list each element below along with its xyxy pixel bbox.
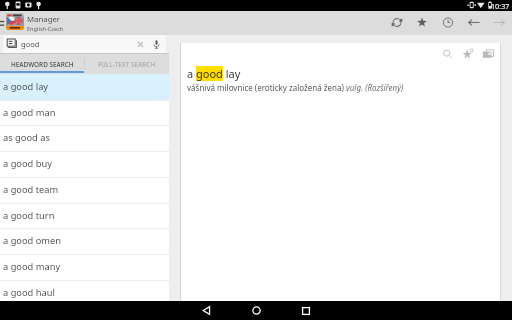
button[interactable]: Refresh xyxy=(385,12,410,34)
button[interactable]: History xyxy=(436,12,462,34)
staticText: English-Czech xyxy=(27,25,64,33)
button[interactable]: a good turn xyxy=(0,203,169,229)
staticText: vášnivá milovnice (eroticky založená žen… xyxy=(187,82,404,93)
staticText: a good haul xyxy=(3,286,55,299)
button[interactable]: a good many xyxy=(0,254,169,280)
staticText: a good omen xyxy=(3,234,62,247)
button[interactable]: Voice search xyxy=(150,38,163,51)
button[interactable]: a good haul xyxy=(0,280,169,306)
staticText: FULL-TEXT SEARCH xyxy=(98,60,156,69)
button[interactable]: a good omen xyxy=(0,228,169,254)
button[interactable]: Add to favourites xyxy=(461,43,481,65)
button[interactable]: Navigation menu xyxy=(0,11,5,35)
button[interactable]: Back xyxy=(181,301,231,320)
button[interactable]: a good buy xyxy=(0,151,169,177)
staticText: a good team xyxy=(3,183,59,196)
button[interactable]: good xyxy=(3,35,166,53)
staticText: a good many xyxy=(3,260,61,273)
button[interactable]: a good man xyxy=(0,100,169,126)
staticText: as good as xyxy=(3,131,50,144)
staticText: good xyxy=(21,39,40,49)
button[interactable]: Forward xyxy=(487,12,512,34)
staticText: a good turn xyxy=(3,209,55,222)
staticText: a good man xyxy=(3,106,56,119)
staticText: Manager xyxy=(27,14,61,25)
staticText: a good buy xyxy=(3,157,52,170)
button[interactable]: Search in entry xyxy=(443,43,461,65)
button[interactable]: Home xyxy=(231,301,281,320)
button[interactable]: HEADWORD SEARCH xyxy=(0,53,84,74)
button[interactable]: Favourites xyxy=(410,12,436,34)
button[interactable]: a good team xyxy=(0,177,169,203)
staticText: 10:37 xyxy=(491,1,510,11)
staticText: HEADWORD SEARCH xyxy=(11,60,74,69)
button[interactable]: Flashcards xyxy=(481,43,500,65)
button[interactable]: Recents xyxy=(281,301,331,320)
button[interactable]: Back xyxy=(462,12,487,34)
staticText: a good lay xyxy=(3,80,49,93)
button[interactable]: as good as xyxy=(0,125,169,151)
staticText: a good lay xyxy=(187,66,241,81)
button[interactable]: FULL-TEXT SEARCH xyxy=(85,53,169,74)
button[interactable]: Dictionary icon xyxy=(6,13,24,30)
button[interactable]: Clear query xyxy=(134,38,147,51)
button[interactable]: a good lay xyxy=(0,74,169,100)
